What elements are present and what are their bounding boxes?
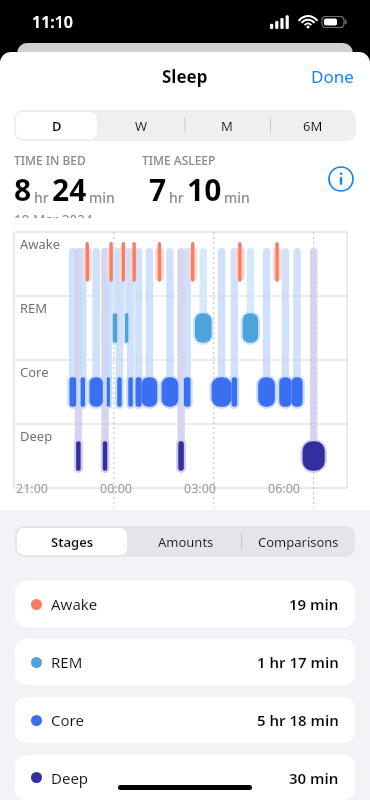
button[interactable]: Comparisons — [244, 528, 353, 555]
button[interactable]: Amounts — [131, 528, 240, 555]
staticText: 1 hr 17 min — [257, 652, 339, 672]
staticText: 00:00 — [100, 480, 132, 497]
staticText: hr — [169, 188, 184, 207]
staticText: 30 min — [289, 768, 339, 788]
staticText: TIME ASLEEP — [142, 152, 216, 168]
staticText: 8 — [14, 169, 32, 210]
button[interactable]: D — [16, 112, 97, 139]
staticText: 21:00 — [16, 480, 48, 497]
staticText: REM — [51, 652, 83, 672]
staticText: 19 Mar 2024 — [14, 211, 93, 218]
staticText: Core — [20, 363, 49, 381]
staticText: 11:10 — [32, 11, 74, 33]
staticText: Deep — [20, 427, 53, 445]
staticText: 03:00 — [184, 480, 216, 497]
button[interactable]: Core — [15, 697, 355, 743]
staticText: 19 min — [289, 594, 339, 614]
staticText: M — [221, 117, 233, 135]
button[interactable]: Awake — [15, 581, 355, 627]
staticText: Comparisons — [258, 533, 339, 551]
button[interactable]: M — [186, 112, 268, 139]
staticText: min — [224, 188, 250, 207]
staticText: 10 — [187, 169, 222, 210]
staticText: 06:00 — [268, 480, 300, 497]
button[interactable]: REM — [15, 639, 355, 685]
button[interactable]: 6M — [272, 112, 354, 139]
staticText: D — [52, 117, 62, 135]
staticText: TIME IN BED — [14, 152, 86, 168]
staticText: 6M — [303, 117, 323, 135]
staticText: min — [89, 188, 115, 207]
staticText: Core — [51, 710, 84, 730]
staticText: Sleep — [162, 65, 208, 88]
staticText: Awake — [20, 235, 61, 253]
button[interactable]: Deep — [15, 755, 355, 800]
staticText: W — [135, 117, 148, 135]
staticText: 24 — [52, 169, 87, 210]
staticText: Stages — [51, 533, 94, 551]
staticText: REM — [20, 299, 48, 317]
staticText: 7 — [149, 169, 167, 210]
staticText: Awake — [51, 594, 98, 614]
button[interactable]: W — [101, 112, 182, 139]
button[interactable]: About sleep stages — [328, 166, 354, 192]
staticText: Amounts — [158, 533, 214, 551]
staticText: Deep — [51, 768, 89, 788]
staticText: 5 hr 18 min — [257, 710, 339, 730]
button[interactable]: Done — [295, 57, 370, 96]
button[interactable]: Stages — [17, 528, 127, 555]
staticText: hr — [34, 188, 49, 207]
